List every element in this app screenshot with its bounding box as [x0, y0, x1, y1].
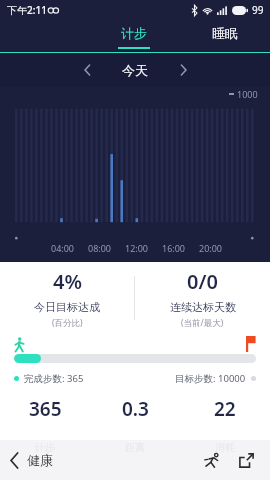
staticText: 0/0 — [187, 268, 218, 295]
staticText: 完成步数: 365 — [24, 372, 84, 385]
staticText: 1000 — [237, 88, 258, 100]
button[interactable]: 健康 — [10, 452, 53, 468]
staticText: 距离 — [125, 441, 145, 454]
staticText: 睡眠 — [212, 25, 238, 41]
staticText: 目标步数: 10000 — [175, 372, 246, 385]
button[interactable]: 365 — [0, 387, 90, 431]
staticText: (当前/最大) — [181, 317, 224, 329]
staticText: 消耗 — [215, 441, 235, 454]
staticText: 08:00 — [88, 242, 112, 254]
button[interactable]: 计步 — [88, 20, 179, 53]
button[interactable]: Share — [232, 446, 260, 474]
staticText: 计步 — [35, 441, 55, 454]
staticText: 今天 — [122, 62, 148, 78]
staticText: 4% — [53, 268, 82, 295]
staticText: (百分比) — [52, 317, 83, 329]
staticText: 16:00 — [162, 242, 186, 254]
staticText: 365 — [29, 396, 62, 422]
button[interactable]: 0.3 — [90, 387, 180, 431]
staticText: 今日目标达成 — [34, 300, 100, 314]
button[interactable]: Next day — [171, 58, 195, 82]
button[interactable]: Previous day — [75, 58, 99, 82]
staticText: 04:00 — [51, 242, 75, 254]
staticText: 0.3 — [122, 396, 149, 422]
staticText: 连续达标天数 — [170, 300, 236, 314]
staticText: 计步 — [121, 25, 147, 41]
button[interactable]: 0/0 — [135, 262, 270, 334]
staticText: 99 — [252, 3, 264, 17]
button[interactable]: 4% — [0, 262, 134, 334]
staticText: 12:00 — [125, 242, 149, 254]
staticText: 20:00 — [199, 242, 223, 254]
staticText: 健康 — [27, 452, 53, 468]
button[interactable]: Activity — [198, 446, 226, 474]
button[interactable] — [14, 354, 256, 363]
button[interactable]: 22 — [180, 387, 270, 431]
staticText: 22 — [214, 396, 236, 422]
staticText: 下午2:11 — [7, 3, 47, 17]
button[interactable]: 睡眠 — [179, 20, 270, 53]
